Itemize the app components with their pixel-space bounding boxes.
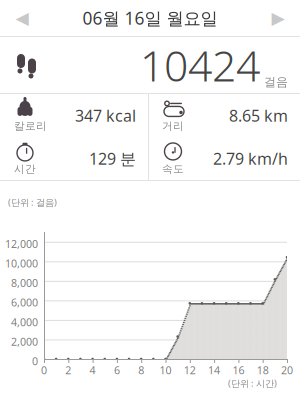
staticText: 8,000 [11, 276, 38, 290]
staticText: 속도 [162, 162, 184, 175]
staticText: 4 [90, 363, 96, 377]
staticText: 12,000 [5, 237, 38, 251]
staticText: 2,000 [11, 334, 38, 349]
staticText: 8.65 km [229, 105, 288, 126]
staticText: 시간 [14, 162, 36, 175]
staticText: 14 [208, 363, 220, 377]
staticText: ▶ [271, 8, 284, 28]
staticText: 18 [257, 363, 269, 377]
staticText: 6,000 [11, 295, 38, 310]
staticText: 0 [41, 363, 47, 377]
staticText: 20 [281, 363, 293, 377]
staticText: 347 kcal [75, 105, 136, 126]
button[interactable]: 이전 날짜 [0, 0, 44, 36]
staticText: 4,000 [11, 315, 38, 329]
staticText: 10 [159, 363, 171, 377]
staticText: 10,000 [5, 256, 38, 270]
staticText: (단위 : 시간) [228, 377, 277, 389]
staticText: (단위 : 걸음) [8, 196, 57, 208]
staticText: 걸음 [264, 75, 288, 89]
staticText: 16 [232, 363, 244, 377]
staticText: 6 [114, 363, 120, 377]
staticText: 2 [65, 363, 71, 377]
staticText: ◀ [15, 8, 28, 28]
button[interactable]: 다음 날짜 [256, 0, 300, 36]
staticText: 10424 [140, 37, 260, 93]
staticText: 칼로리 [14, 119, 47, 132]
staticText: 129 분 [89, 148, 136, 169]
staticText: 거리 [162, 119, 184, 132]
staticText: 8 [138, 363, 144, 377]
staticText: 06월 16일 월요일 [82, 6, 217, 29]
staticText: 2.79 km/h [213, 148, 288, 169]
staticText: 12 [184, 363, 196, 377]
staticText: 0 [32, 354, 38, 368]
